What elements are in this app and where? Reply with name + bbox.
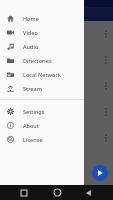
staticText: 14 MB [25, 113, 37, 118]
staticText: 712 MB [25, 139, 40, 144]
button[interactable]: Settings [0, 104, 84, 118]
staticText: Settings [23, 108, 45, 115]
button[interactable]: About [0, 118, 84, 132]
staticText: Directories [23, 57, 52, 64]
staticText: Video [23, 29, 38, 36]
staticText: Audio [23, 43, 39, 50]
staticText: About [23, 122, 39, 129]
staticText: Serenity.Was.Here.mkv [25, 28, 79, 35]
staticText: License [23, 136, 43, 143]
button[interactable]: Video [0, 25, 84, 39]
button[interactable]: Home [48, 185, 66, 200]
button[interactable]: Local Network [0, 67, 84, 81]
button[interactable]: Recents [15, 185, 33, 200]
button[interactable]: Directories [0, 53, 84, 67]
staticText: Holiday clip 2019 [25, 54, 65, 61]
staticText: 319 MB [25, 61, 40, 66]
button[interactable]: License [0, 132, 84, 146]
staticText: Local Network [23, 71, 61, 78]
button[interactable]: Audio [0, 39, 84, 53]
button[interactable]: Play [92, 165, 108, 181]
button[interactable]: Stream [0, 81, 84, 95]
staticText: Sample audio july [25, 106, 67, 113]
staticText: Stream [23, 85, 42, 92]
button[interactable]: Back [80, 185, 98, 200]
staticText: 1.0 GB [25, 87, 38, 92]
button[interactable]: Home [0, 11, 84, 25]
staticText: Home [23, 15, 39, 22]
